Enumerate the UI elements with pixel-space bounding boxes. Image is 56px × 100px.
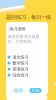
staticText: 数学练习	[12, 61, 28, 65]
button[interactable]: 综合练习	[7, 72, 43, 78]
staticText: 题目练习，每日一练	[6, 14, 51, 21]
button[interactable]: 数学练习	[7, 60, 43, 66]
staticText: 开始	[31, 88, 39, 93]
staticText: 请按照要求完成题目，注意时间。	[7, 34, 39, 44]
staticText: 语文练习	[12, 55, 28, 59]
button[interactable]: 开始	[29, 88, 41, 93]
staticText: 英语练习	[12, 67, 28, 71]
staticText: · 练习说明	[7, 26, 25, 31]
staticText: 取消	[14, 88, 22, 93]
button[interactable]: 取消	[12, 88, 24, 93]
button[interactable]: 语文练习	[7, 54, 43, 60]
staticText: 综合练习	[12, 73, 28, 77]
button[interactable]: 英语练习	[7, 66, 43, 72]
